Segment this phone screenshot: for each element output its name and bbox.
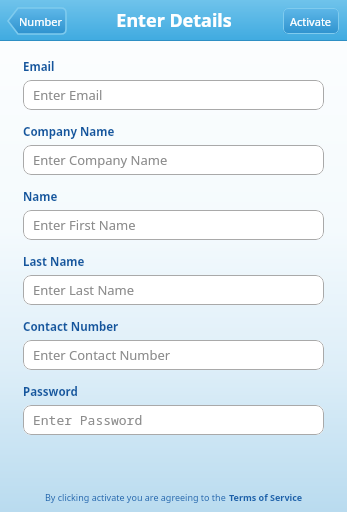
staticText: Enter Contact Number — [33, 346, 171, 364]
button[interactable]: Enter Company Name — [23, 145, 324, 175]
staticText: Name — [23, 189, 58, 205]
button[interactable]: Activate — [283, 8, 339, 34]
staticText: Enter Company Name — [33, 151, 168, 169]
staticText: Email — [23, 59, 55, 75]
button[interactable]: Enter Last Name — [23, 275, 324, 305]
button[interactable]: Enter First Name — [23, 210, 324, 240]
button[interactable]: By clicking activate you are agreeing to… — [45, 491, 303, 503]
button[interactable]: Number — [8, 8, 66, 34]
staticText: By clicking activate you are agreeing to… — [45, 491, 229, 503]
staticText: Password — [23, 384, 78, 400]
staticText: Company Name — [23, 124, 115, 140]
staticText: Enter Email — [33, 86, 103, 104]
button[interactable]: Enter Contact Number — [23, 340, 324, 370]
staticText: Last Name — [23, 254, 85, 270]
staticText: Enter Password — [33, 411, 143, 429]
staticText: Enter First Name — [33, 216, 136, 234]
staticText: Number — [19, 14, 62, 29]
button[interactable]: Enter Password — [23, 405, 324, 435]
button[interactable]: Enter Email — [23, 80, 324, 110]
staticText: Enter Details — [116, 8, 232, 33]
staticText: Activate — [290, 14, 332, 29]
staticText: Terms of Service — [229, 491, 303, 503]
staticText: Enter Last Name — [33, 281, 135, 299]
staticText: Contact Number — [23, 319, 119, 335]
